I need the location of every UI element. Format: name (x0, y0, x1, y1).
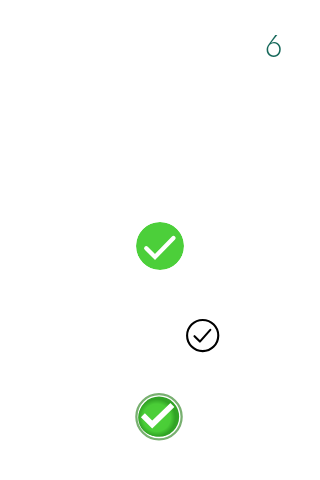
button[interactable]: Completed (136, 394, 183, 441)
button[interactable]: Task not done (185, 318, 221, 354)
button[interactable]: Task done (136, 222, 184, 270)
staticText: 6 (265, 24, 283, 69)
